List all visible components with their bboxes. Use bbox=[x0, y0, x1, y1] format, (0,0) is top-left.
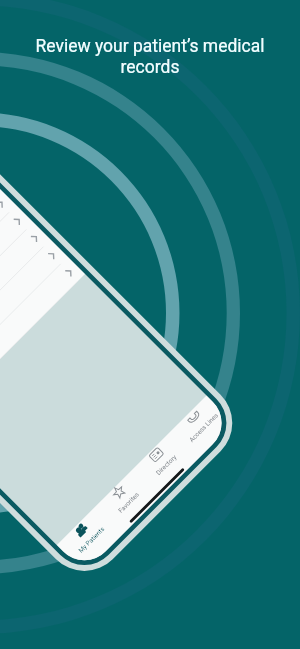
button[interactable] bbox=[0, 0, 300, 649]
